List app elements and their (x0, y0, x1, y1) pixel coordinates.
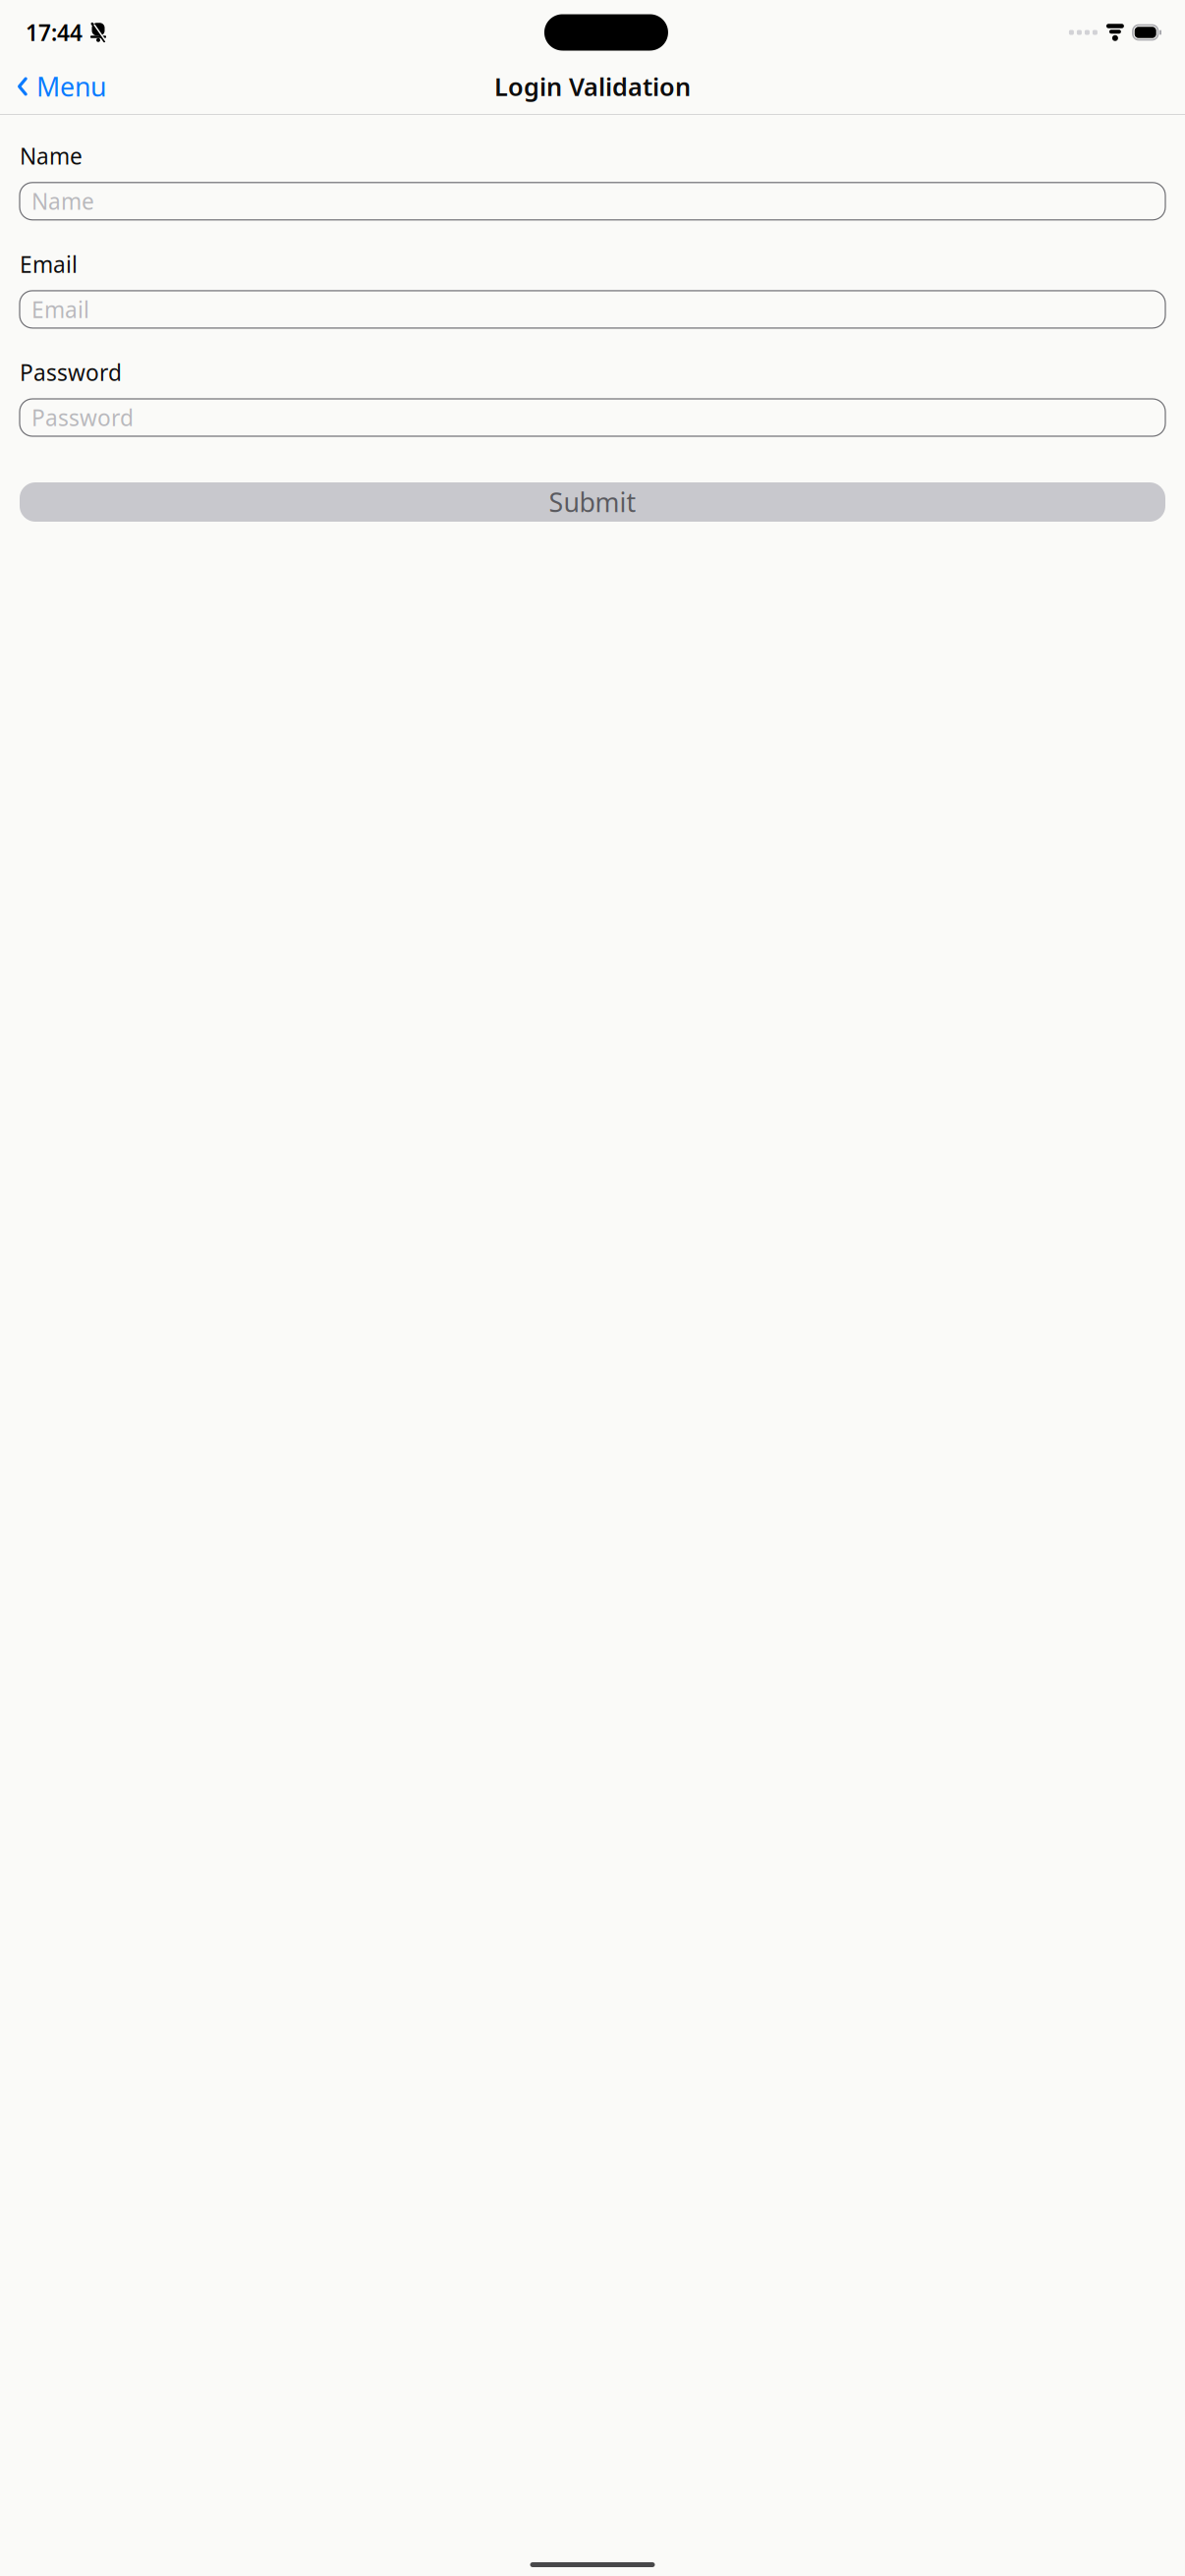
staticText: Name (20, 141, 83, 171)
staticText: Password (20, 358, 122, 387)
button[interactable]: Submit (20, 482, 1165, 522)
staticText: Name (31, 186, 94, 216)
staticText: Login Validation (494, 70, 691, 103)
staticText: Email (20, 249, 78, 279)
staticText: Email (31, 295, 89, 324)
staticText: Menu (36, 69, 106, 104)
button[interactable]: Email (20, 291, 1165, 328)
button[interactable]: Menu (8, 63, 106, 110)
button[interactable]: Password (20, 399, 1165, 436)
staticText: Password (31, 403, 134, 432)
button[interactable]: Name (20, 183, 1165, 220)
staticText: Submit (549, 485, 636, 519)
staticText: 17:44 (26, 18, 83, 47)
